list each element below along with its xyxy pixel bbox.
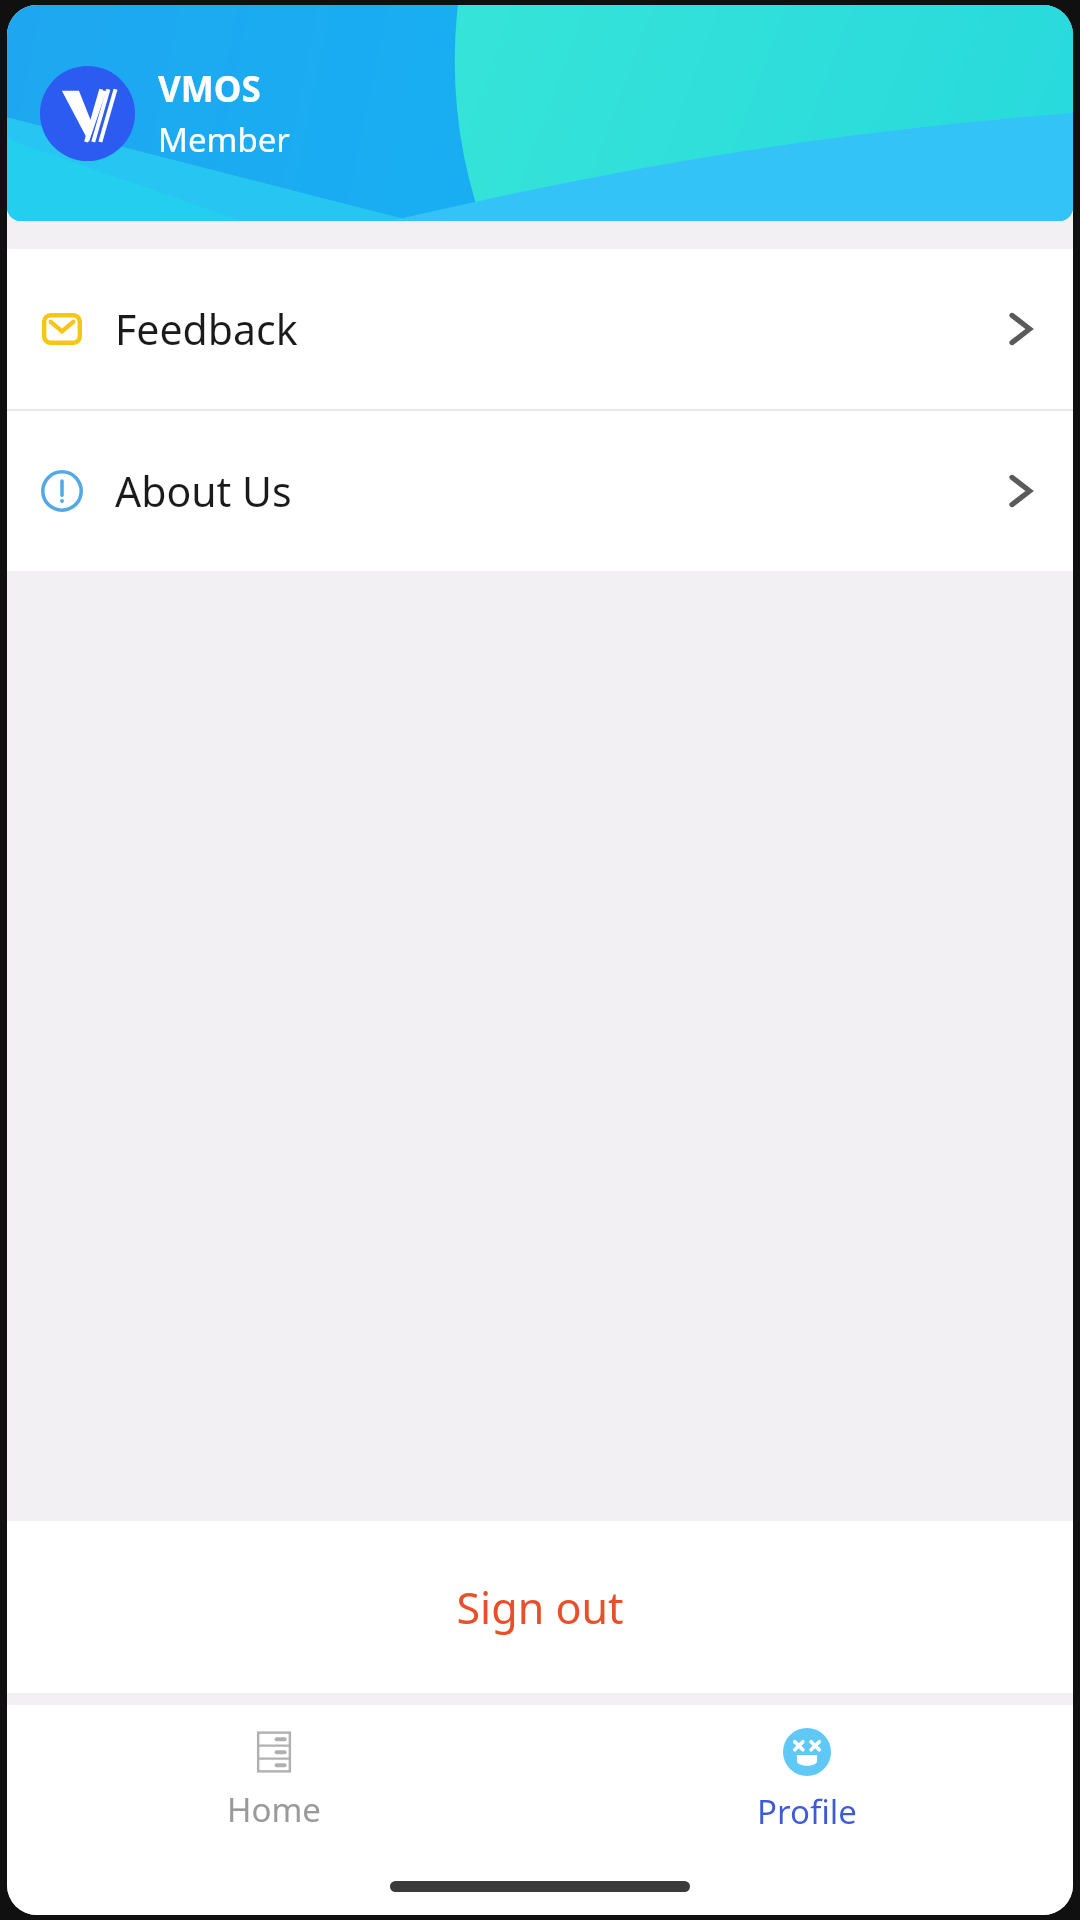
staticText: Feedback [115,301,298,357]
staticText: About Us [115,463,292,519]
button[interactable]: Home [7,1705,540,1857]
other: Home [252,1730,296,1774]
button[interactable]: Feedback [7,249,1073,409]
staticText: Home [227,1787,321,1832]
button[interactable]: Profile [540,1705,1073,1857]
staticText: Profile [757,1789,857,1834]
staticText: VMOS [158,65,261,113]
staticText: Member [158,117,290,162]
button[interactable]: Sign out [7,1521,1073,1693]
other: Profile [783,1728,831,1776]
button[interactable]: About Us [7,411,1073,571]
staticText: Sign out [456,1578,624,1637]
